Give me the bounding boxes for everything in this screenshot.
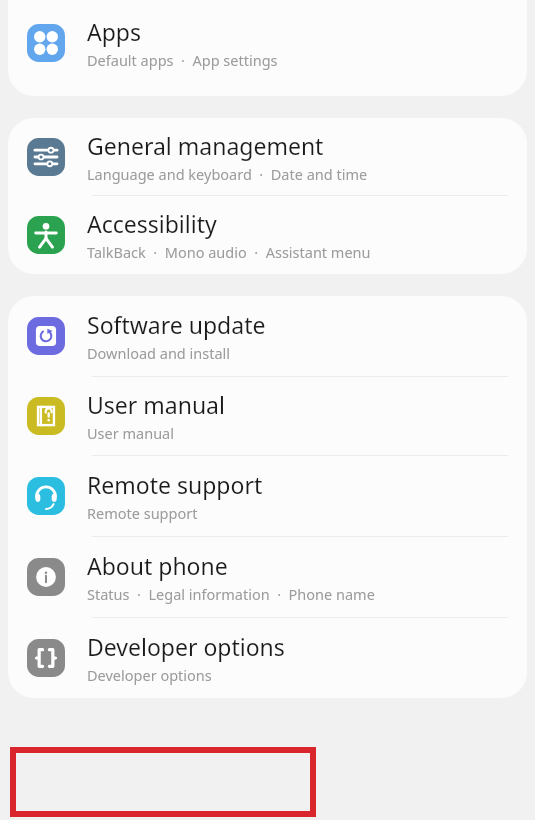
staticText: Apps [87, 16, 142, 47]
other: User manual [27, 397, 65, 435]
staticText: Default apps · App settings [87, 50, 278, 70]
staticText: Language and keyboard · Date and time [87, 164, 368, 184]
staticText: Software update [87, 309, 266, 340]
button[interactable]: User manual [8, 377, 527, 455]
button[interactable]: Accessibility [8, 196, 527, 274]
staticText: TalkBack · Mono audio · Assistant menu [87, 242, 371, 262]
staticText: General management [87, 130, 324, 161]
staticText: Remote support [87, 503, 198, 523]
staticText: Developer options [87, 665, 212, 685]
other: Software update [27, 317, 65, 355]
other: Apps [27, 24, 65, 62]
other: Developer options [27, 639, 65, 677]
staticText: About phone [87, 550, 228, 581]
button[interactable]: Developer options [8, 618, 527, 698]
staticText: Accessibility [87, 208, 217, 239]
other: Accessibility [27, 216, 65, 254]
other: Remote support [27, 477, 65, 515]
staticText: User manual [87, 389, 225, 420]
button[interactable]: Apps [8, 0, 527, 86]
staticText: Developer options [87, 631, 285, 662]
other: About phone [27, 558, 65, 596]
staticText: User manual [87, 423, 174, 443]
button[interactable]: Remote support [8, 456, 527, 536]
button[interactable]: General management [8, 118, 527, 195]
other: General management [27, 138, 65, 176]
staticText: Remote support [87, 469, 263, 500]
button[interactable]: Software update [8, 296, 527, 376]
staticText: Download and install [87, 343, 231, 363]
button[interactable]: About phone [8, 537, 527, 617]
staticText: Status · Legal information · Phone name [87, 584, 375, 604]
